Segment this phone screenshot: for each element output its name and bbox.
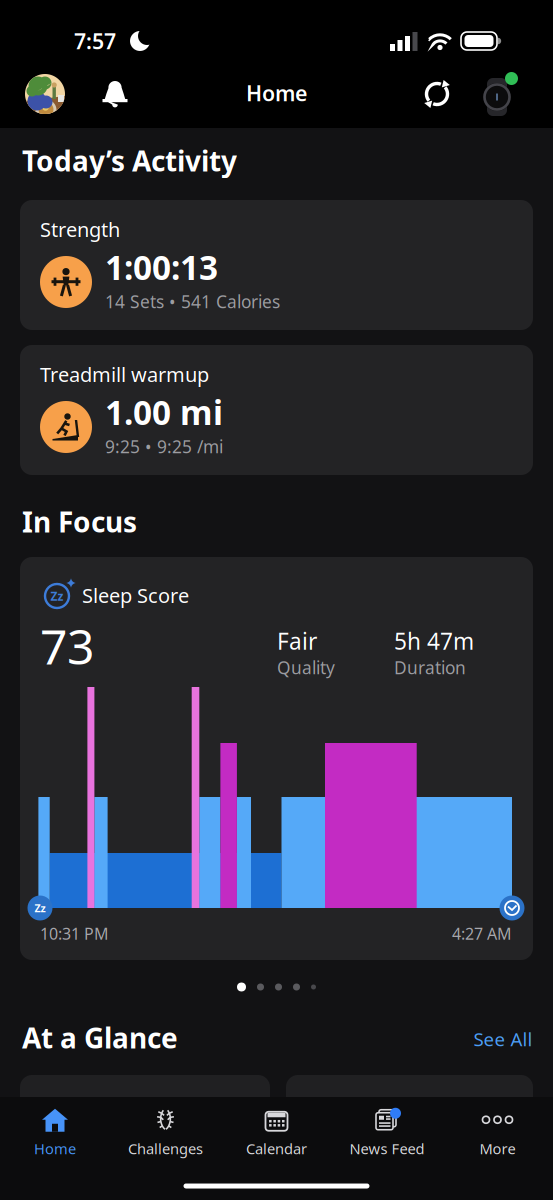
staticText: Sleep Score xyxy=(82,582,189,609)
staticText: More xyxy=(479,1139,515,1158)
staticText: Home xyxy=(246,79,307,107)
staticText: Duration xyxy=(394,656,466,679)
button[interactable]: Challenges xyxy=(113,1105,217,1161)
staticText: 14 Sets • 541 Calories xyxy=(105,290,280,313)
staticText: 4:27 AM xyxy=(452,923,512,944)
staticText: 73 xyxy=(40,614,94,678)
staticText: Fair xyxy=(277,626,317,656)
staticText: Zz xyxy=(34,901,45,915)
button[interactable] xyxy=(420,78,454,110)
button[interactable]: Calendar xyxy=(224,1105,328,1161)
staticText: 1.00 mi xyxy=(105,390,223,434)
button[interactable]: News Feed xyxy=(335,1105,439,1161)
staticText: Zz xyxy=(50,588,63,604)
button[interactable]: Treadmill warmup xyxy=(20,345,533,475)
staticText: 7:57 xyxy=(74,27,116,55)
button[interactable] xyxy=(25,74,65,114)
button[interactable]: More xyxy=(445,1105,549,1161)
staticText: 1:00:13 xyxy=(105,245,218,289)
staticText: At a Glance xyxy=(22,1019,178,1056)
button[interactable]: Home xyxy=(3,1105,107,1161)
button[interactable]: Strength xyxy=(20,200,533,330)
staticText: Strength xyxy=(40,216,120,243)
staticText: Quality xyxy=(277,656,335,679)
staticText: News Feed xyxy=(349,1139,424,1158)
staticText: See All xyxy=(473,1027,532,1051)
staticText: Home xyxy=(34,1139,76,1158)
staticText: 5h 47m xyxy=(394,626,474,656)
button[interactable] xyxy=(101,79,129,109)
staticText: In Focus xyxy=(22,503,137,540)
staticText: 10:31 PM xyxy=(40,923,109,944)
staticText: 9:25 • 9:25 /mi xyxy=(105,435,223,458)
staticText: Challenges xyxy=(128,1139,203,1158)
button[interactable]: See All xyxy=(473,1027,532,1051)
staticText: Calendar xyxy=(246,1139,307,1158)
staticText: Today’s Activity xyxy=(22,142,237,179)
staticText: Treadmill warmup xyxy=(40,361,209,388)
button[interactable] xyxy=(286,1075,533,1115)
button[interactable] xyxy=(474,71,520,117)
button[interactable]: Zz xyxy=(20,557,533,960)
button[interactable] xyxy=(20,1075,270,1115)
